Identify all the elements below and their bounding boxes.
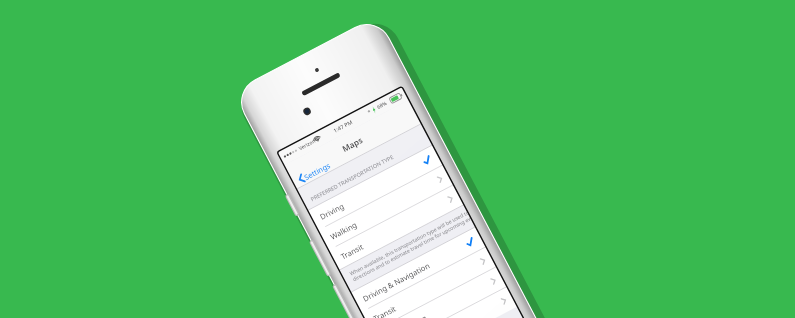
button[interactable]: iPhone showing Maps settings screen <box>0 0 795 318</box>
